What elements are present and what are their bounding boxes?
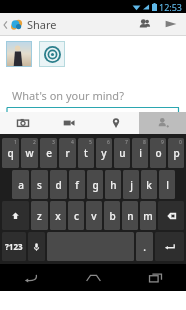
button[interactable]: t (78, 138, 94, 168)
button[interactable]: Delete (158, 201, 184, 230)
button[interactable]: m (140, 201, 156, 230)
button[interactable]: . (136, 232, 153, 261)
button[interactable]: Add location (92, 112, 139, 134)
button[interactable]: Attached photo (7, 42, 31, 66)
button[interactable]: z (31, 201, 48, 230)
staticText: 9 (161, 139, 164, 146)
staticText: w (25, 146, 34, 160)
button[interactable]: d (50, 170, 67, 199)
staticText: c (74, 209, 79, 223)
button[interactable]: Choose audience (132, 13, 158, 35)
staticText: 12:53 (159, 1, 183, 13)
staticText: x (55, 209, 61, 223)
staticText: . (143, 240, 146, 254)
button[interactable]: l (159, 170, 175, 199)
staticText: k (146, 178, 152, 192)
staticText: m (143, 209, 153, 223)
button[interactable]: p (168, 138, 184, 168)
button[interactable]: w (21, 138, 38, 168)
staticText: e (46, 146, 52, 160)
staticText: o (155, 146, 162, 160)
button[interactable]: f (69, 170, 85, 199)
staticText: t (84, 146, 88, 160)
button[interactable]: u (114, 138, 130, 168)
button[interactable]: Enter (155, 232, 184, 261)
staticText: j (130, 178, 133, 192)
button[interactable]: What's on your mind? (0, 74, 186, 112)
button[interactable]: o (150, 138, 166, 168)
staticText: 5 (89, 139, 92, 146)
button[interactable]: ?123 (2, 232, 26, 261)
button[interactable]: Shift (2, 201, 29, 230)
button[interactable]: Back (0, 264, 62, 291)
button[interactable]: s (31, 170, 48, 199)
staticText: s (37, 178, 42, 192)
staticText: 6 (107, 139, 110, 146)
button[interactable]: k (141, 170, 157, 199)
staticText: z (37, 209, 42, 223)
button[interactable]: b (104, 201, 120, 230)
staticText: v (91, 209, 97, 223)
staticText: d (55, 178, 62, 192)
staticText: n (127, 209, 134, 223)
button[interactable]: Tag people (139, 112, 186, 134)
button[interactable]: r (59, 138, 76, 168)
button[interactable]: x (50, 201, 66, 230)
staticText: u (119, 146, 126, 160)
button[interactable]: Circle (39, 41, 65, 67)
button[interactable]: a (12, 170, 29, 199)
button[interactable]: Add video (46, 112, 92, 134)
staticText: 4 (71, 139, 74, 146)
button[interactable]: h (105, 170, 121, 199)
staticText: g (92, 178, 99, 192)
button[interactable]: Navigate up (0, 17, 59, 32)
button[interactable]: v (86, 201, 102, 230)
button[interactable]: c (68, 201, 84, 230)
button[interactable]: g (87, 170, 103, 199)
staticText: y (101, 146, 107, 160)
staticText: b (109, 209, 116, 223)
staticText: h (110, 178, 117, 192)
staticText: a (18, 178, 24, 192)
staticText: 3 (52, 139, 55, 146)
staticText: What's on your mind? (12, 88, 124, 103)
button[interactable]: Send (158, 13, 184, 35)
staticText: 8 (143, 139, 146, 146)
staticText: Share (27, 17, 57, 32)
staticText: f (75, 178, 79, 192)
button[interactable]: y (96, 138, 112, 168)
button[interactable]: q (2, 138, 19, 168)
staticText: l (166, 178, 169, 192)
staticText: q (7, 146, 14, 160)
staticText: i (139, 146, 142, 160)
staticText: ?123 (5, 241, 23, 252)
button[interactable]: Add photo (0, 112, 46, 134)
button[interactable]: Recent apps (124, 264, 186, 291)
button[interactable]: n (122, 201, 138, 230)
staticText: 7 (125, 139, 128, 146)
staticText: r (65, 146, 70, 160)
button[interactable]: Voice input (28, 232, 45, 261)
button[interactable]: j (123, 170, 139, 199)
button[interactable]: e (40, 138, 57, 168)
staticText: 2 (33, 139, 36, 146)
staticText: 1 (14, 139, 17, 146)
staticText: 0 (179, 139, 182, 146)
staticText: p (173, 146, 180, 160)
button[interactable]: i (132, 138, 148, 168)
button[interactable]: Home (62, 264, 124, 291)
